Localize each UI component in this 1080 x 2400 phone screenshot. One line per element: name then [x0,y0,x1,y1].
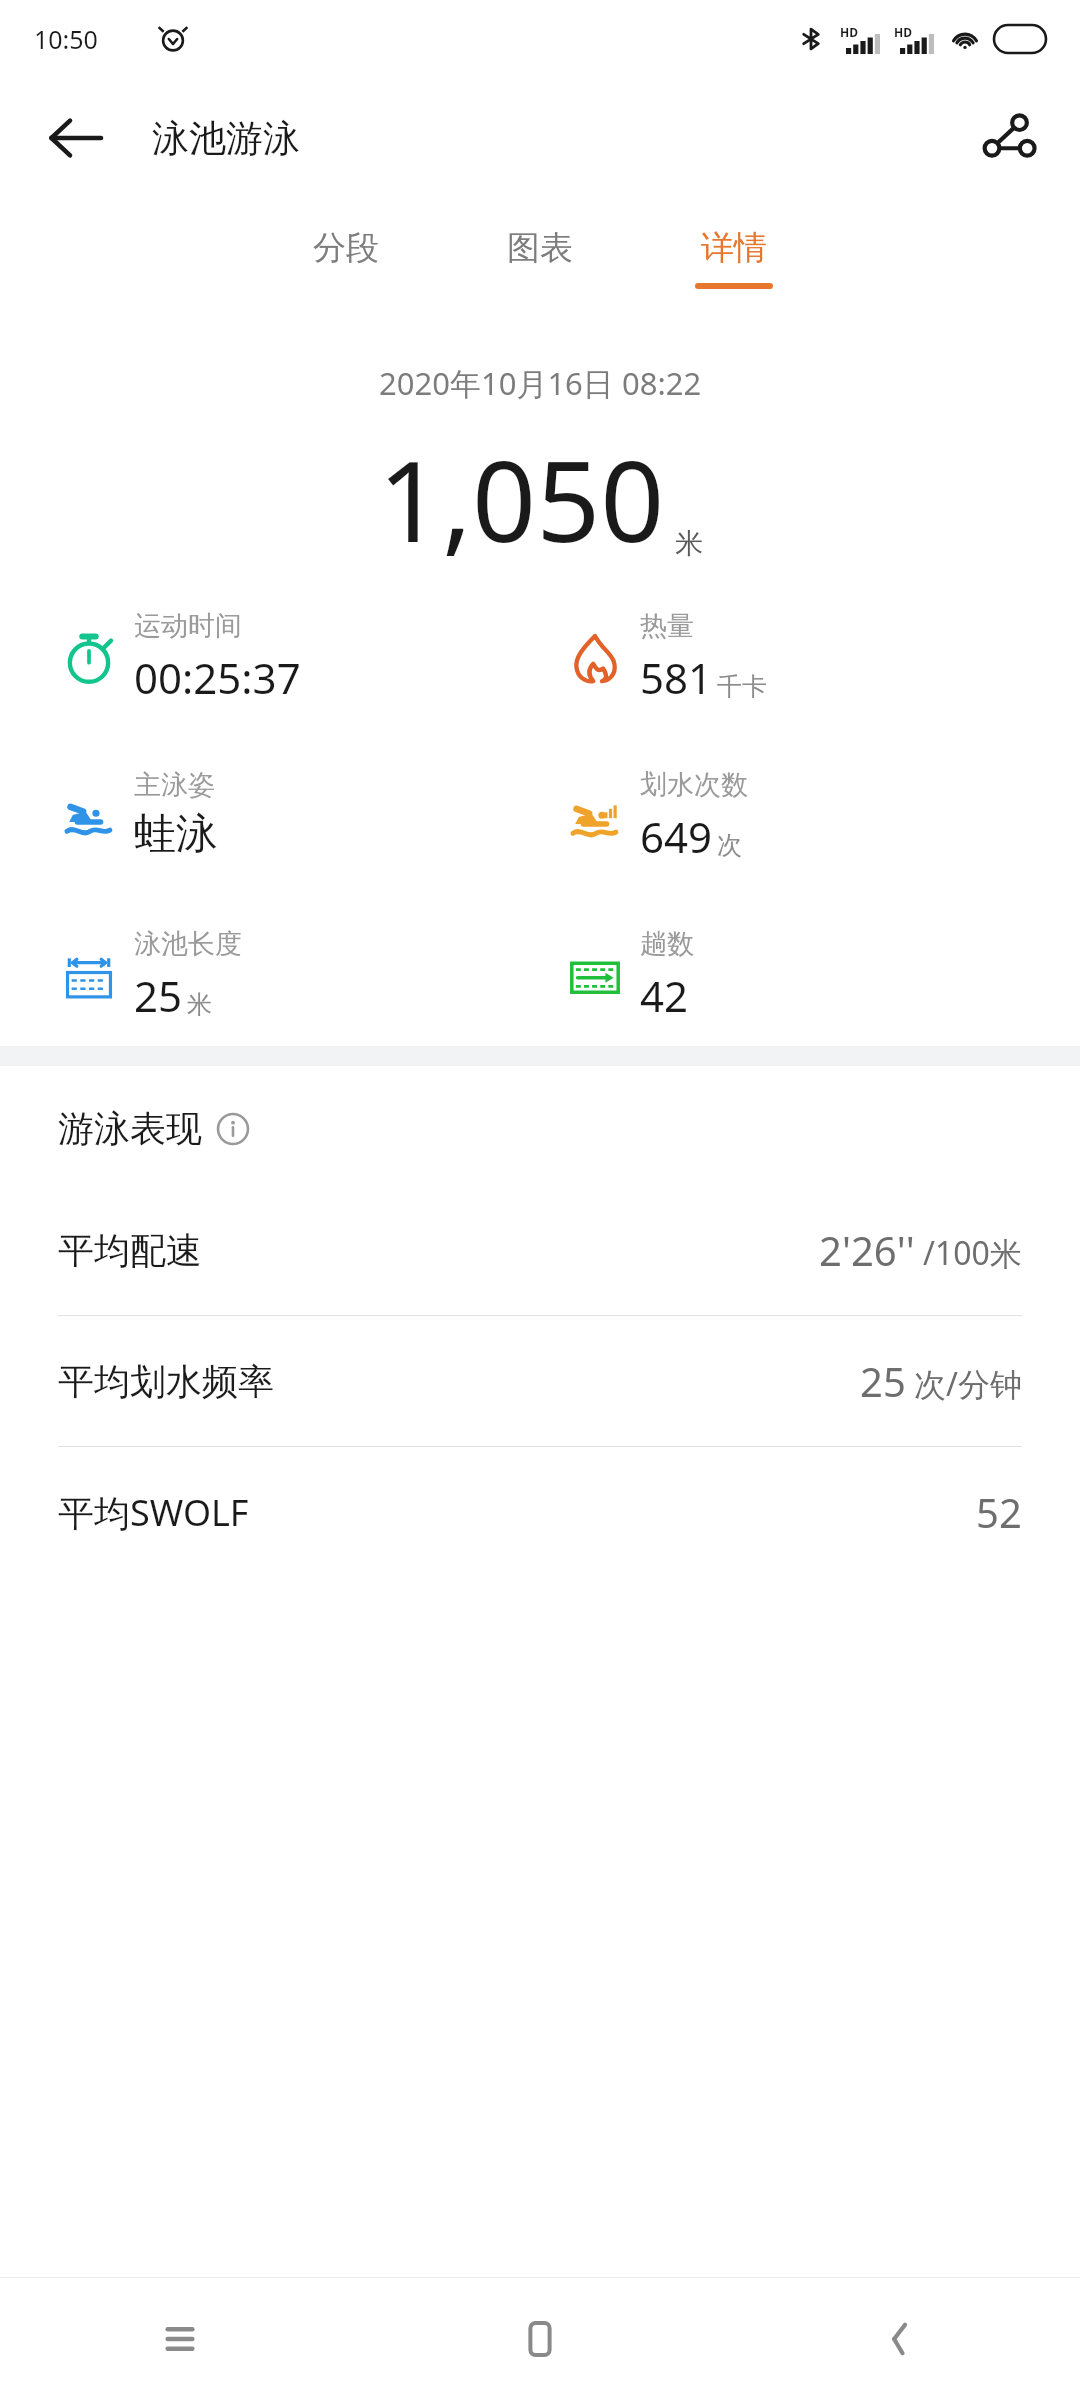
staticText: 趟数 [640,927,694,961]
staticText: 游泳表现 [58,1106,202,1151]
button[interactable]: 泳池长度 [60,927,242,1024]
button[interactable]: Share [976,106,1040,170]
button[interactable]: 运动时间 [60,609,301,706]
staticText: /100米 [923,1231,1022,1275]
button[interactable]: 游泳表现 [58,1106,250,1151]
staticText: 52 [976,1485,1022,1539]
button[interactable]: 平均配速 [0,1185,1080,1315]
button[interactable]: 详情 [685,219,783,297]
staticText: 划水次数 [640,768,748,802]
staticText: 分段 [313,227,379,269]
staticText: 蛙泳 [134,808,218,861]
staticText: 米 [187,989,212,1020]
other: Info [216,1112,250,1146]
button[interactable]: 划水次数 [566,768,748,865]
staticText: 平均配速 [58,1228,202,1273]
staticText: 00:25:37 [134,649,301,706]
staticText: HD [894,24,912,40]
staticText: 2020年10月16日 08:22 [379,362,702,404]
button[interactable]: 平均SWOLF [0,1447,1080,1577]
staticText: 泳池长度 [134,927,242,961]
staticText: 图表 [507,227,573,269]
staticText: 次 [717,830,742,861]
staticText: 次/分钟 [914,1362,1022,1406]
button[interactable]: 图表 [491,219,589,297]
staticText: 10:50 [34,22,98,56]
staticText: 581 [640,649,713,706]
staticText: 热量 [640,609,694,643]
staticText: 25 [860,1354,906,1408]
button[interactable]: Back [44,107,106,169]
button[interactable]: Home [360,2278,720,2400]
staticText: 1,050 [378,422,665,575]
staticText: HD [840,24,858,40]
button[interactable]: 分段 [297,219,395,297]
button[interactable]: Recents [0,2278,360,2400]
button[interactable]: 平均划水频率 [0,1316,1080,1446]
staticText: 泳池游泳 [152,115,300,162]
staticText: 主泳姿 [134,768,215,802]
button[interactable]: 热量 [566,609,767,706]
staticText: 详情 [701,227,767,269]
button[interactable]: 主泳姿 [60,768,218,861]
staticText: 25 [134,967,183,1024]
staticText: 42 [640,967,689,1024]
staticText: 平均划水频率 [58,1359,274,1404]
staticText: 运动时间 [134,609,242,643]
button[interactable]: Back [720,2278,1080,2400]
staticText: 2'26'' [819,1223,915,1277]
staticText: 649 [640,808,713,865]
staticText: 千卡 [717,671,767,702]
button[interactable]: 趟数 [566,927,694,1024]
staticText: 米 [675,526,703,561]
staticText: 平均SWOLF [58,1488,249,1537]
